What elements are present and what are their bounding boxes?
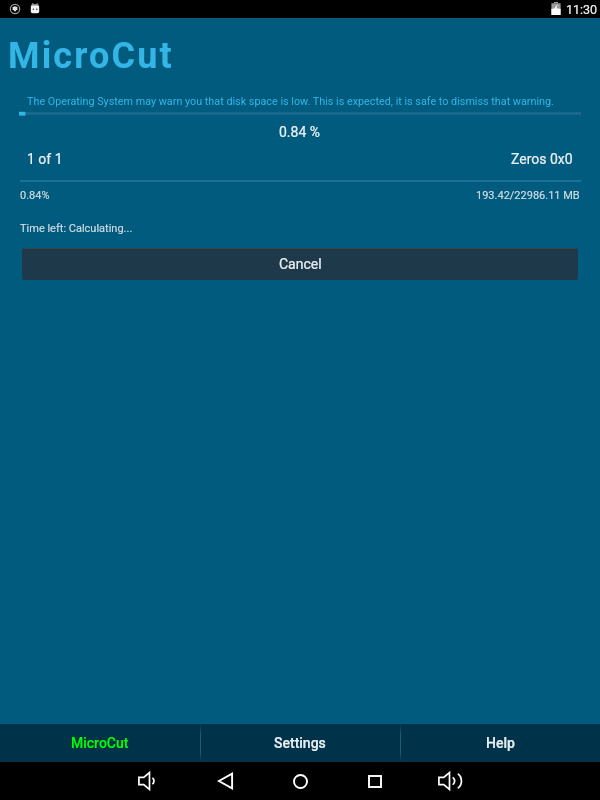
staticText: 11:30	[566, 2, 598, 17]
staticText: Settings	[274, 735, 326, 751]
button[interactable]: Back	[206, 762, 244, 800]
button[interactable]: Recents	[356, 762, 394, 800]
staticText: MicroCut	[71, 735, 129, 751]
button[interactable]: Volume down	[130, 762, 168, 800]
staticText: MicroCut	[8, 35, 174, 77]
staticText: Zeros 0x0	[511, 151, 573, 167]
staticText: 0.84 %	[279, 124, 321, 140]
staticText: Help	[486, 735, 515, 751]
button[interactable]: MicroCut	[0, 724, 200, 762]
button[interactable]: Volume up	[430, 762, 468, 800]
button[interactable]: Cancel	[22, 248, 578, 280]
staticText: 1 of 1	[27, 151, 63, 167]
staticText: Time left: Calculating...	[20, 222, 133, 235]
staticText: The Operating System may warn you that d…	[27, 95, 554, 108]
button[interactable]: Home	[281, 762, 319, 800]
button[interactable]: Settings	[200, 724, 400, 762]
staticText: 193.42/22986.11 MB	[476, 189, 580, 202]
button[interactable]: Help	[400, 724, 600, 762]
staticText: Cancel	[279, 256, 322, 272]
staticText: 0.84%	[20, 189, 50, 202]
